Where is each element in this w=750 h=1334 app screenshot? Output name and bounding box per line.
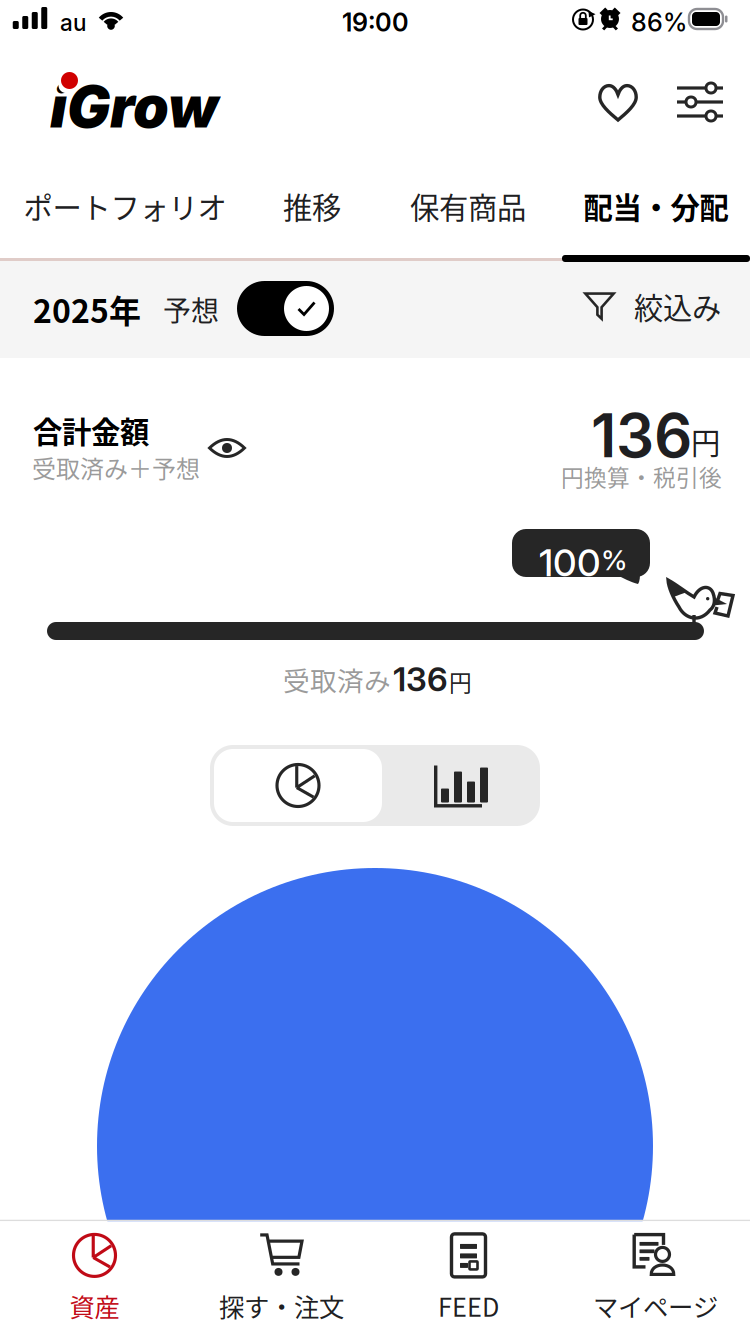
staticText: 円換算・税引後: [561, 460, 722, 493]
staticText: マイページ: [593, 1287, 718, 1324]
button[interactable]: 絞込み: [584, 285, 721, 327]
staticText: 136: [591, 399, 692, 472]
button[interactable]: ポートフォリオ: [0, 154, 250, 258]
staticText: 19:00: [342, 7, 409, 38]
button[interactable]: お気に入り: [586, 70, 650, 135]
staticText: 保有商品: [410, 185, 526, 227]
staticText: 100: [539, 540, 601, 585]
staticText: 受取済み: [283, 660, 391, 699]
staticText: 絞込み: [634, 285, 721, 327]
button[interactable]: 保有商品: [374, 154, 562, 258]
button[interactable]: 配当・分配: [562, 154, 750, 258]
staticText: ポートフォリオ: [23, 185, 226, 227]
staticText: 86%: [631, 7, 687, 38]
staticText: 予想: [163, 289, 219, 329]
staticText: 2025年: [33, 286, 141, 332]
staticText: 配当・分配: [583, 185, 728, 227]
button[interactable]: 推移: [250, 154, 374, 258]
staticText: 推移: [283, 185, 341, 227]
button[interactable]: 円グラフ表示: [214, 749, 382, 822]
staticText: iGrow: [50, 72, 218, 141]
button[interactable]: 資産: [1, 1221, 188, 1334]
staticText: %: [601, 543, 628, 577]
staticText: 探す・注文: [219, 1287, 344, 1324]
button[interactable]: マイページ: [562, 1221, 749, 1334]
staticText: 資産: [69, 1287, 119, 1324]
staticText: 円: [449, 665, 472, 698]
staticText: 円: [691, 420, 720, 462]
staticText: FEED: [438, 1287, 499, 1324]
staticText: au: [60, 9, 86, 36]
staticText: 受取済み＋予想: [32, 450, 200, 485]
button[interactable]: 表示設定: [664, 73, 736, 131]
button[interactable]: FEED: [375, 1221, 562, 1334]
button[interactable]: 予想表示の切替: [237, 281, 334, 336]
staticText: 136: [393, 659, 448, 699]
button[interactable]: 棒グラフ表示: [382, 749, 536, 822]
button[interactable]: 探す・注文: [188, 1221, 375, 1334]
button[interactable]: 金額の表示切替: [196, 425, 258, 471]
staticText: 合計金額: [33, 409, 149, 451]
